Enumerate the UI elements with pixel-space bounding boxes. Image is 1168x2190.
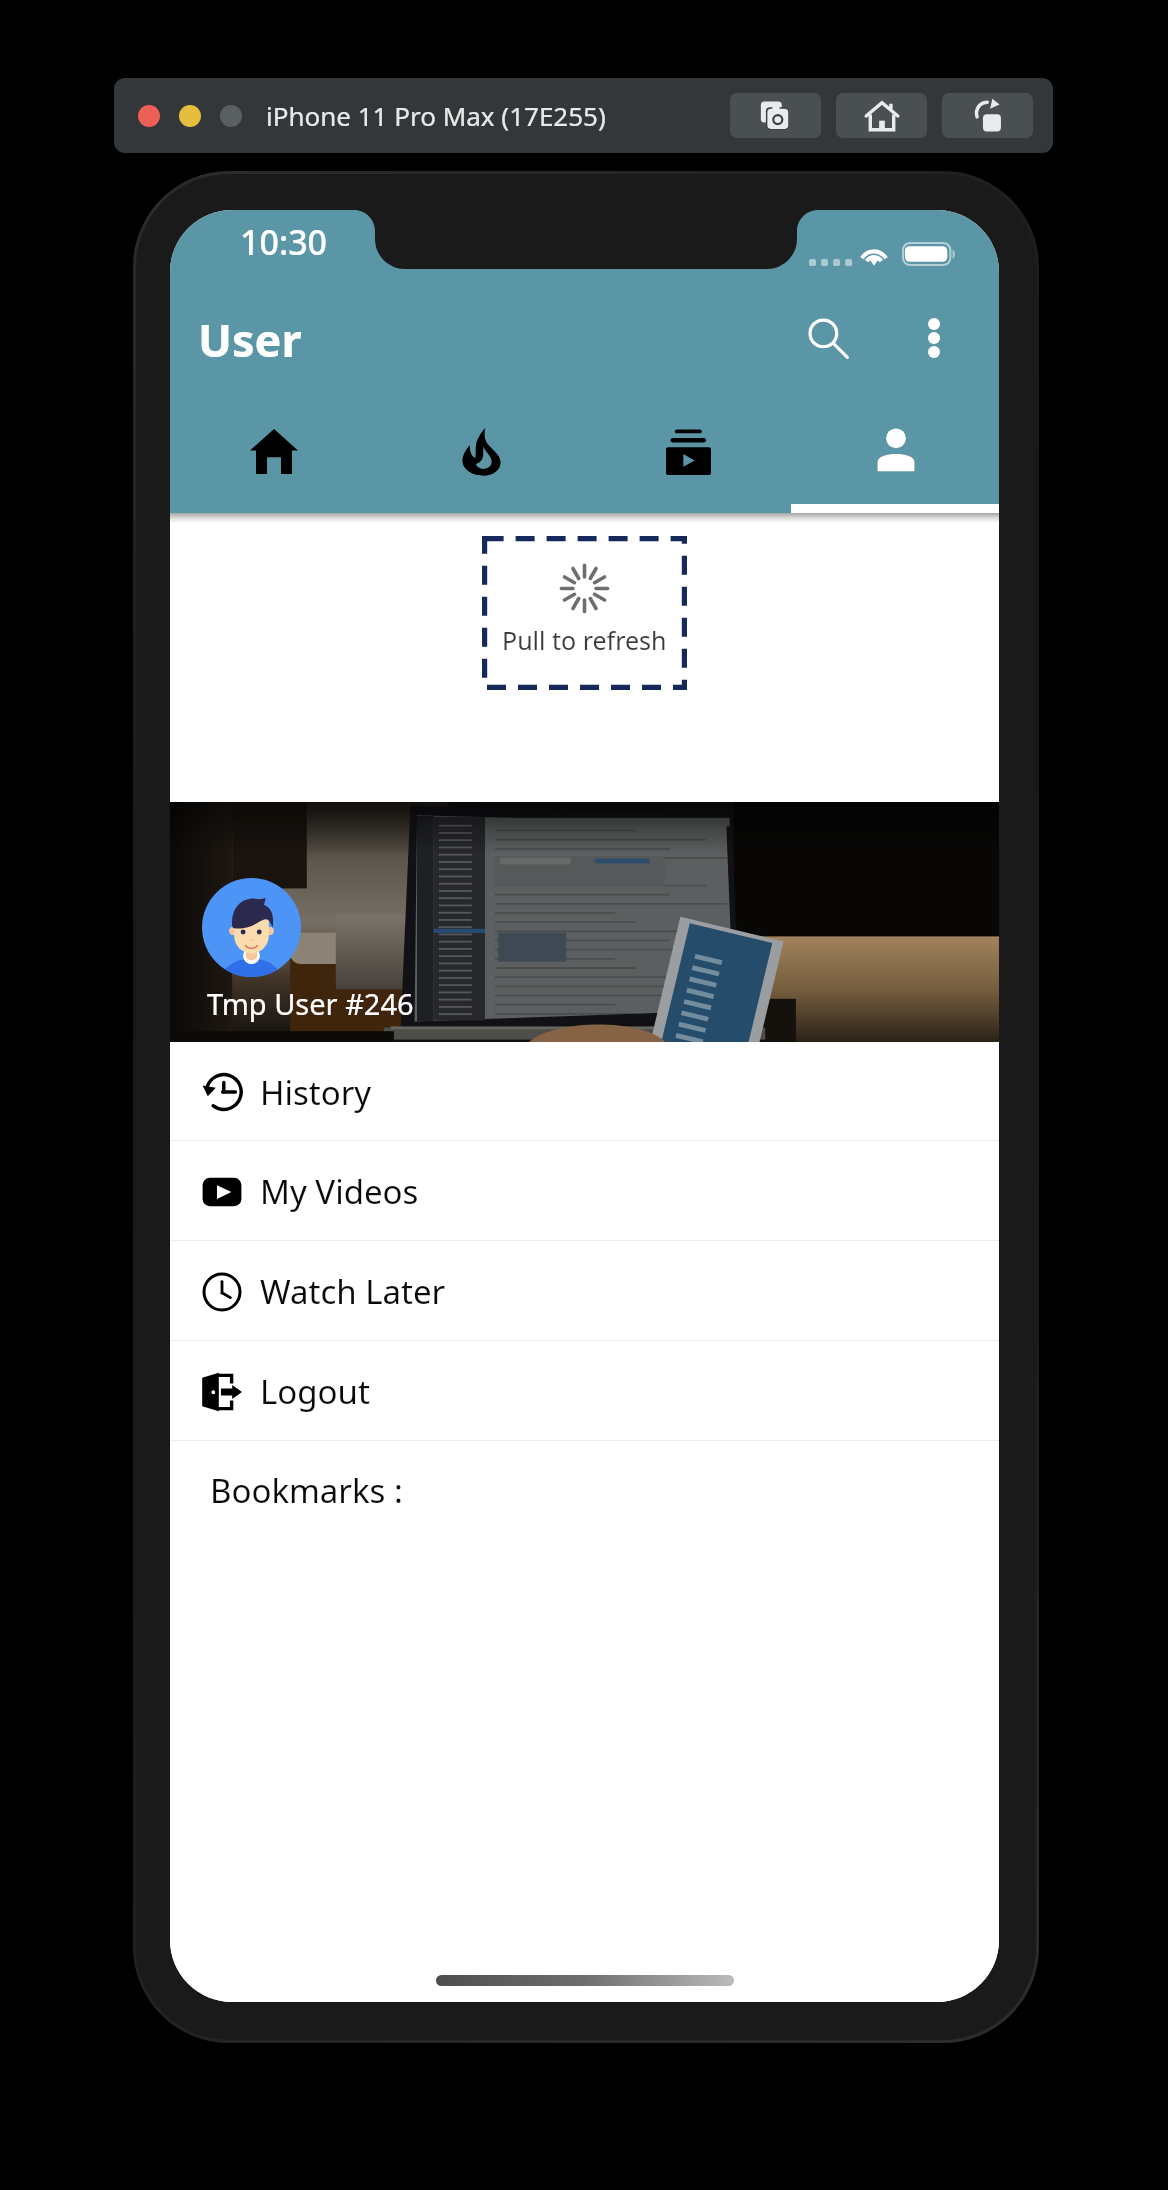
staticText: Bookmarks :	[210, 1468, 403, 1513]
button[interactable]: Watch Later	[170, 1241, 999, 1340]
staticText: Watch Later	[260, 1269, 446, 1314]
button[interactable]: Search	[786, 296, 870, 380]
button[interactable]: My Videos	[170, 1141, 999, 1240]
staticText: Tmp User #246	[207, 984, 414, 1023]
button[interactable]: Trending	[378, 400, 585, 513]
button[interactable]: Screenshot	[730, 93, 821, 138]
button[interactable]: Home	[836, 93, 927, 138]
button[interactable]: History	[170, 1042, 999, 1140]
staticText: Pull to refresh	[502, 623, 667, 657]
staticText: History	[260, 1070, 372, 1115]
button[interactable]: Home	[170, 400, 378, 513]
button[interactable]: Rotate	[942, 93, 1033, 138]
staticText: Logout	[260, 1369, 370, 1414]
button[interactable]: Pull to refresh	[482, 536, 687, 690]
staticText: 10:30	[240, 219, 328, 265]
staticText: My Videos	[260, 1169, 419, 1214]
staticText: iPhone 11 Pro Max (17E255)	[266, 98, 606, 133]
button[interactable]: More options	[892, 296, 976, 380]
button[interactable]: Subscriptions	[585, 400, 792, 513]
staticText: User	[198, 309, 302, 370]
button[interactable]: Logout	[170, 1341, 999, 1440]
button[interactable]: Account	[792, 400, 999, 513]
